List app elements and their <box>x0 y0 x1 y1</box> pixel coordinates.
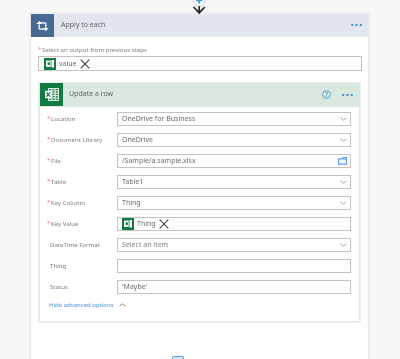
button[interactable]: Select an item <box>117 238 351 252</box>
button[interactable]: Thing <box>117 196 351 210</box>
staticText: Thing <box>137 219 156 229</box>
staticText: Thing <box>122 198 141 208</box>
staticText: Apply to each <box>61 20 106 30</box>
button[interactable]: Browse files <box>338 157 347 165</box>
staticText: Update a row <box>69 89 114 99</box>
button[interactable] <box>31 14 368 37</box>
staticText: 'Maybe' <box>122 282 148 292</box>
button[interactable] <box>39 83 360 107</box>
button[interactable]: Hide advanced options <box>49 301 126 309</box>
staticText: Document Library <box>51 135 103 143</box>
button[interactable]: OneDrive for Business <box>117 112 351 126</box>
button[interactable]: value <box>38 56 362 71</box>
staticText: * <box>38 45 42 53</box>
staticText: Location <box>51 114 76 122</box>
staticText: Status <box>50 282 68 290</box>
button[interactable]: /Sample/a sample.xlsx <box>117 154 351 168</box>
staticText: Thing <box>50 261 67 269</box>
staticText: OneDrive <box>122 135 154 145</box>
staticText: Key Column <box>51 198 86 206</box>
staticText: File <box>51 156 61 164</box>
staticText: * <box>47 114 51 122</box>
staticText: Select an item <box>122 240 169 250</box>
button[interactable]: Help <box>321 89 332 100</box>
staticText: value <box>59 59 77 69</box>
button[interactable]: Remove <box>80 59 90 69</box>
button[interactable]: OneDrive <box>117 133 351 147</box>
staticText: Table <box>51 177 67 185</box>
button[interactable]: 'Maybe' <box>117 280 351 294</box>
button[interactable]: Table1 <box>117 175 351 189</box>
button[interactable]: More options <box>346 15 366 35</box>
staticText: OneDrive for Business <box>122 114 196 124</box>
button[interactable]: More options <box>337 85 357 105</box>
staticText: Hide advanced options <box>49 301 114 309</box>
button[interactable] <box>117 259 351 273</box>
staticText: /Sample/a sample.xlsx <box>122 156 196 166</box>
staticText: Key Value <box>51 219 79 227</box>
staticText: ? <box>325 90 329 99</box>
button[interactable]: Thing <box>117 217 351 231</box>
staticText: * <box>47 135 51 143</box>
staticText: * <box>47 198 51 206</box>
staticText: * <box>47 177 51 185</box>
button[interactable]: Remove <box>159 219 169 229</box>
staticText: Select an output from previous steps <box>42 45 147 53</box>
staticText: DateTime Format <box>50 240 100 248</box>
button[interactable]: New step <box>172 356 184 359</box>
staticText: * <box>47 219 51 227</box>
staticText: * <box>47 156 51 164</box>
staticText: Table1 <box>122 177 144 187</box>
